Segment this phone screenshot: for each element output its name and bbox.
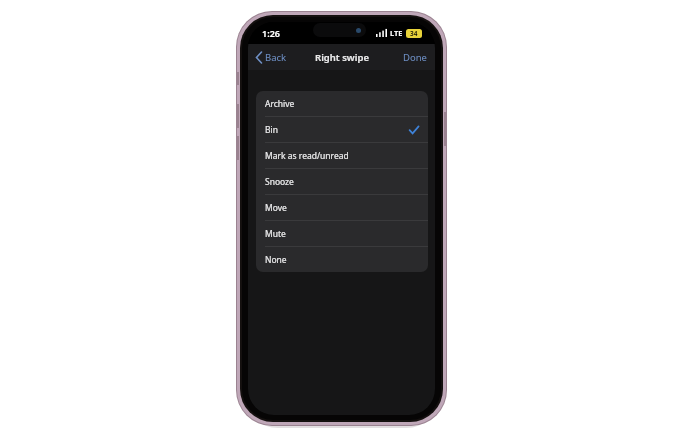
staticText: 1:26 [262, 27, 280, 39]
button[interactable]: Archive [256, 91, 428, 116]
button[interactable]: Snooze [256, 169, 428, 194]
staticText: None [265, 254, 287, 266]
button[interactable]: Mark as read/unread [256, 143, 428, 168]
staticText: Back [265, 51, 287, 64]
button[interactable]: None [256, 247, 428, 272]
button[interactable]: Mute [256, 221, 428, 246]
staticText: Snooze [265, 176, 294, 188]
staticText: Mark as read/unread [265, 150, 349, 162]
staticText: Archive [265, 98, 295, 110]
staticText: Right swipe [315, 51, 369, 64]
button[interactable]: Back [248, 47, 295, 68]
button[interactable]: Done [395, 47, 435, 68]
staticText: Move [265, 202, 287, 214]
staticText: 34 [410, 29, 418, 38]
staticText: Mute [265, 228, 286, 240]
staticText: Bin [265, 124, 278, 136]
staticText: LTE [390, 28, 403, 38]
button[interactable]: Move [256, 195, 428, 220]
button[interactable]: Bin [256, 117, 428, 142]
